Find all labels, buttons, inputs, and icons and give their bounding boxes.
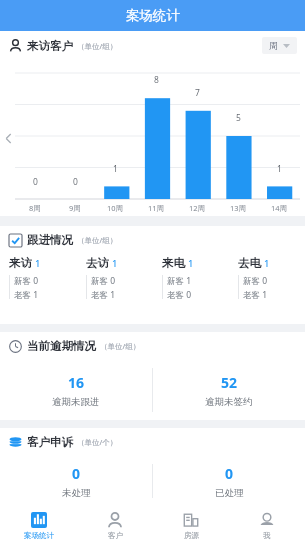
staticText: 新客 0 (91, 275, 116, 287)
staticText: 逾期未跟进 (52, 396, 100, 408)
button[interactable]: 0 (0, 456, 152, 506)
staticText: 来访 (9, 256, 32, 270)
staticText: 房源 (184, 531, 199, 540)
staticText: 去电 (238, 256, 261, 270)
staticText: 我 (263, 531, 271, 540)
staticText: 1 (112, 257, 118, 270)
staticText: 案场统计 (24, 531, 54, 540)
button[interactable]: 案场统计 (0, 506, 77, 546)
staticText: 52 (221, 373, 238, 392)
button[interactable]: 来访 (0, 254, 77, 324)
staticText: 老客 1 (243, 289, 268, 301)
staticText: 8周 (29, 203, 41, 213)
staticText: 老客 0 (167, 289, 192, 301)
staticText: 新客 0 (243, 275, 268, 287)
staticText: 1 (188, 257, 194, 270)
staticText: 来电 (162, 256, 185, 270)
staticText: 0 (72, 464, 81, 483)
staticText: 逾期未签约 (205, 396, 253, 408)
staticText: 周 (269, 40, 278, 51)
staticText: 9周 (69, 203, 81, 213)
staticText: （单位/个） (77, 437, 118, 447)
staticText: 8 (154, 74, 159, 86)
staticText: 5 (236, 112, 241, 124)
staticText: 1 (264, 257, 270, 270)
staticText: 0 (225, 464, 234, 483)
button[interactable]: 周 (262, 37, 297, 54)
staticText: 14周 (271, 203, 288, 213)
button[interactable]: 来电 (153, 254, 229, 324)
button[interactable]: 0 (153, 456, 305, 506)
staticText: 新客 0 (14, 275, 39, 287)
staticText: 客户申诉 (27, 435, 73, 449)
staticText: 10周 (107, 203, 124, 213)
staticText: 来访客户 (27, 39, 73, 53)
staticText: 11周 (148, 203, 165, 213)
staticText: （单位/组） (77, 235, 118, 245)
button[interactable]: 去电 (229, 254, 305, 324)
staticText: 新客 1 (167, 275, 192, 287)
staticText: 已处理 (215, 487, 244, 499)
staticText: 7 (195, 87, 200, 99)
button[interactable]: 房源 (153, 506, 229, 546)
staticText: 1 (35, 257, 41, 270)
staticText: 0 (73, 176, 78, 188)
button[interactable]: 去访 (77, 254, 153, 324)
button[interactable]: 16 (0, 360, 152, 420)
button[interactable]: 客户 (77, 506, 153, 546)
staticText: 1 (113, 163, 118, 175)
staticText: 16 (68, 373, 85, 392)
staticText: （单位/组） (77, 41, 118, 51)
staticText: 当前逾期情况 (27, 339, 96, 353)
staticText: 跟进情况 (27, 233, 73, 247)
staticText: 去访 (86, 256, 109, 270)
staticText: 未处理 (62, 487, 91, 499)
staticText: 老客 1 (91, 289, 116, 301)
staticText: 13周 (230, 203, 247, 213)
staticText: 客户 (108, 531, 123, 540)
staticText: 0 (33, 176, 38, 188)
staticText: 1 (277, 163, 282, 175)
staticText: 12周 (189, 203, 206, 213)
staticText: 老客 1 (14, 289, 39, 301)
staticText: （单位/组） (100, 341, 141, 351)
button[interactable]: 52 (153, 360, 305, 420)
button[interactable]: 我 (229, 506, 305, 546)
staticText: 案场统计 (126, 7, 180, 24)
